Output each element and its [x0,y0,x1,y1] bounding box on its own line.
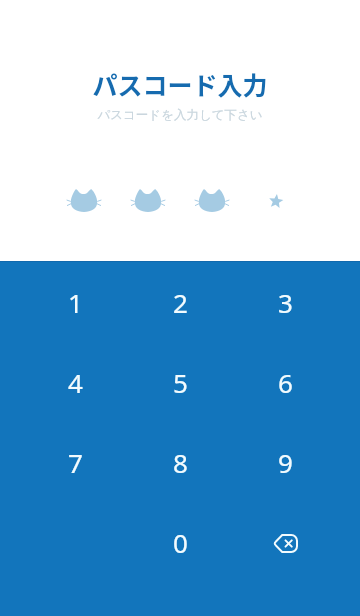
staticText: パスコード入力 [0,66,360,102]
staticText: 0 [173,525,188,560]
button[interactable]: Delete [233,502,338,582]
button[interactable]: 5 [128,342,233,422]
staticText: 3 [278,285,293,320]
button[interactable]: 1 [22,262,128,342]
staticText: 1 [68,285,83,320]
button[interactable]: 9 [233,422,338,502]
button[interactable]: 2 [128,262,233,342]
staticText: 4 [68,365,83,400]
staticText: 7 [68,445,83,480]
staticText: パスコードを入力して下さい [0,107,360,123]
staticText: 8 [173,445,188,480]
button[interactable]: 0 [128,502,233,582]
staticText: 5 [173,365,188,400]
staticText: 2 [173,285,188,320]
button[interactable]: 8 [128,422,233,502]
button[interactable]: 3 [233,262,338,342]
staticText: 6 [278,365,293,400]
button[interactable]: 6 [233,342,338,422]
button[interactable]: 7 [22,422,128,502]
staticText: 9 [278,445,293,480]
button[interactable]: 4 [22,342,128,422]
